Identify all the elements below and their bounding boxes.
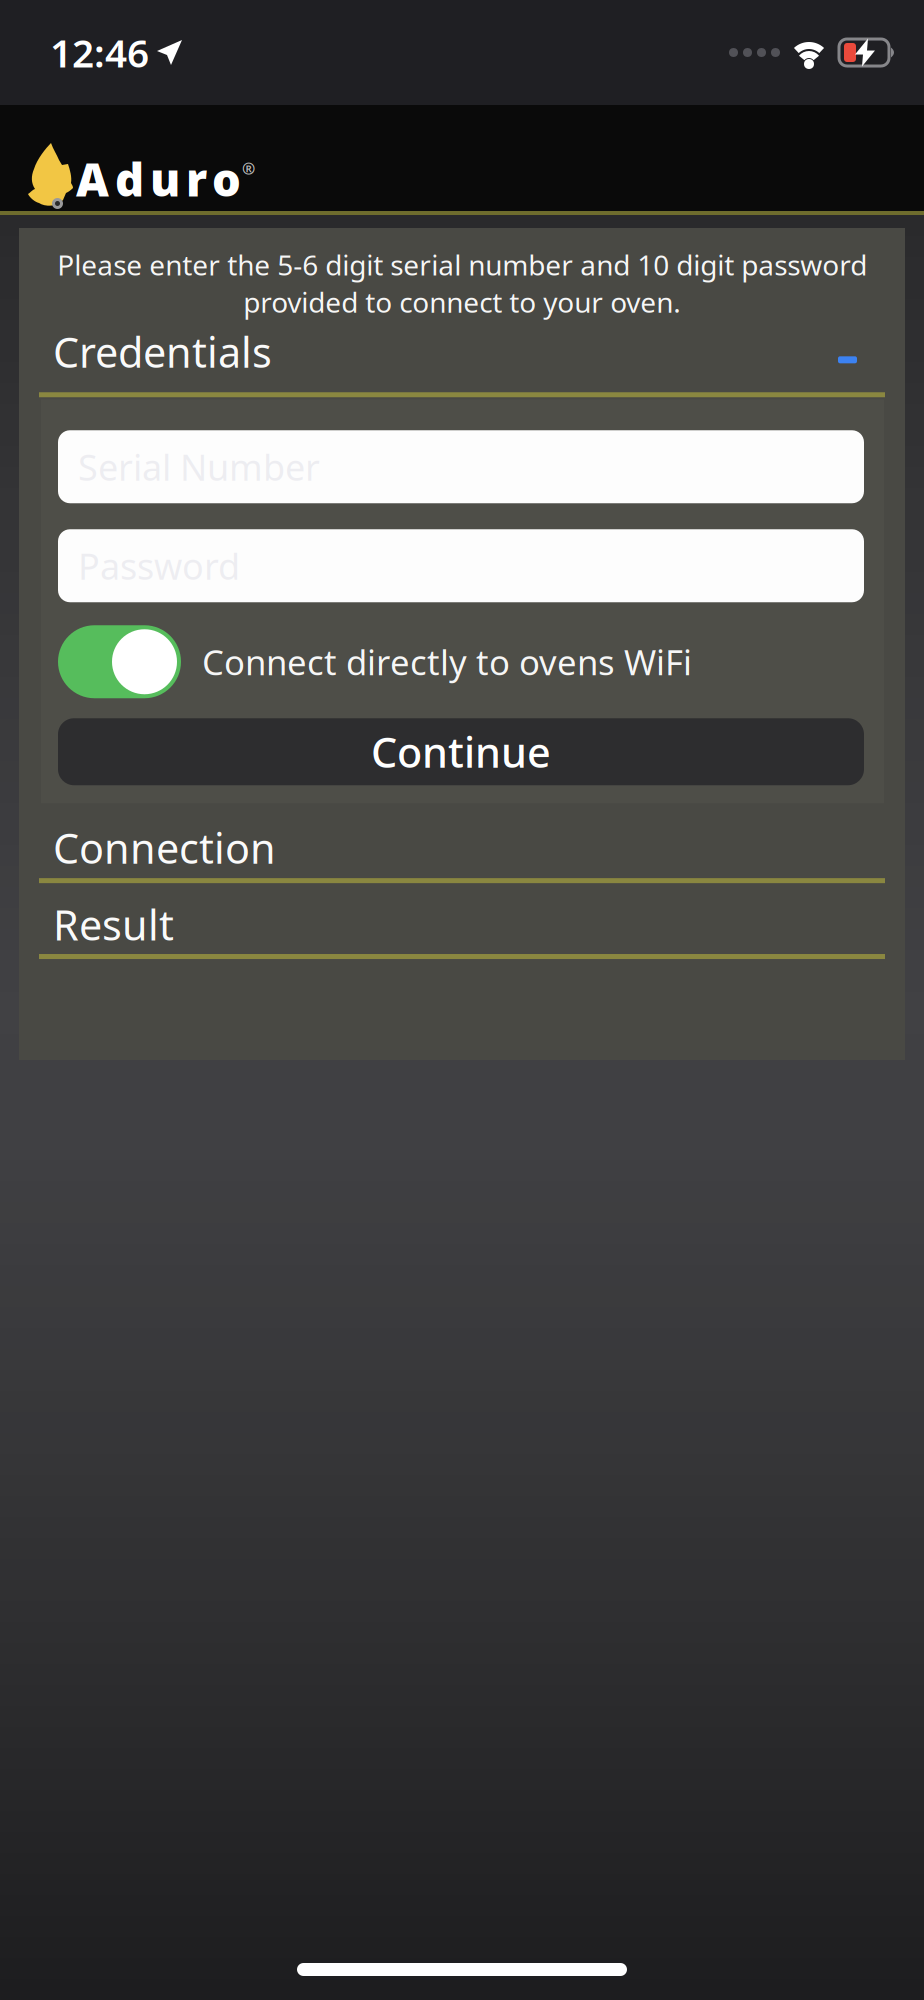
button[interactable]: Continue <box>58 698 864 785</box>
staticText: Please enter the 5-6 digit serial number… <box>57 246 867 320</box>
button[interactable]: Connection <box>19 803 905 875</box>
staticText: Aduro <box>76 149 241 209</box>
button[interactable]: Credentials <box>19 320 905 379</box>
staticText: 12:46 <box>50 27 149 78</box>
staticText: Connection <box>53 820 276 875</box>
button[interactable]: Serial Number <box>58 430 864 503</box>
staticText: Serial Number <box>78 443 320 491</box>
staticText: Password <box>78 542 240 590</box>
staticText: Connect directly to ovens WiFi <box>202 639 692 685</box>
button[interactable]: Password <box>58 529 864 602</box>
staticText: Result <box>53 897 174 952</box>
staticText: Credentials <box>53 324 272 379</box>
button[interactable]: Connect directly to ovens WiFi <box>58 602 864 698</box>
button[interactable]: Result <box>19 883 905 952</box>
staticText: ® <box>242 158 255 179</box>
staticText: Continue <box>371 724 551 779</box>
